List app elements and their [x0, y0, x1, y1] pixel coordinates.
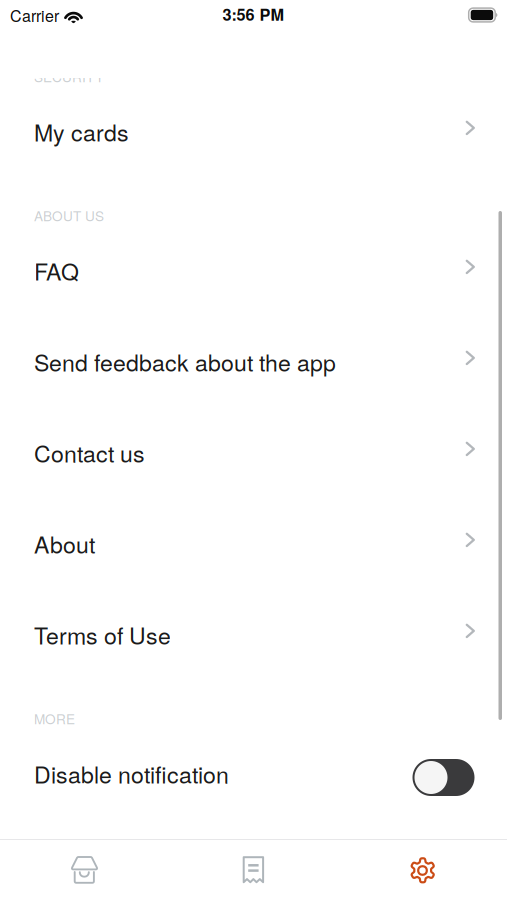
button[interactable]: Terms of Use: [0, 589, 507, 680]
staticText: Send feedback about the app: [34, 345, 336, 378]
staticText: SECURITY: [34, 66, 104, 86]
staticText: About: [34, 527, 95, 560]
staticText: Disable notification: [34, 757, 229, 790]
staticText: MORE: [34, 708, 75, 728]
staticText: Terms of Use: [34, 618, 171, 651]
button[interactable]: Send feedback about the app: [0, 316, 507, 407]
staticText: FAQ: [34, 254, 79, 287]
staticText: ABOUT US: [34, 205, 104, 225]
button[interactable]: Settings: [338, 840, 507, 900]
button[interactable]: About: [0, 498, 507, 589]
button[interactable]: Shop: [0, 840, 169, 900]
staticText: My cards: [34, 115, 129, 148]
staticText: Contact us: [34, 436, 145, 469]
button[interactable]: Orders: [169, 840, 338, 900]
button[interactable]: FAQ: [0, 225, 507, 316]
button[interactable]: My cards: [0, 86, 507, 177]
staticText: 3:56 PM: [222, 2, 284, 26]
staticText: Carrier: [10, 3, 59, 26]
button[interactable]: Contact us: [0, 407, 507, 498]
button[interactable]: Disable notification: [0, 728, 507, 819]
